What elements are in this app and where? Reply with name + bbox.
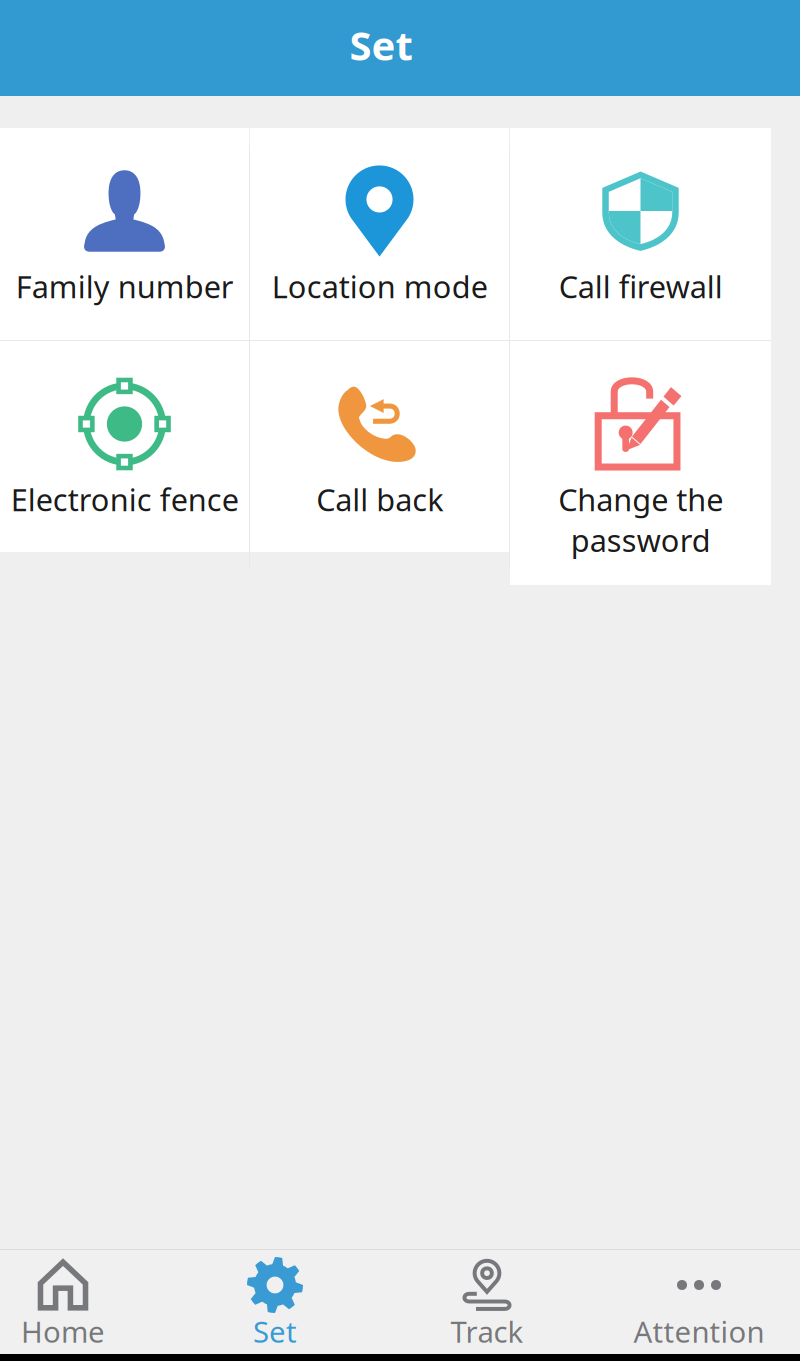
button[interactable]: Track xyxy=(381,1249,593,1354)
button[interactable]: Electronic fence xyxy=(0,341,249,552)
staticText: Call back xyxy=(316,479,443,520)
staticText: Location mode xyxy=(271,266,487,307)
button[interactable]: Home xyxy=(0,1249,169,1354)
button[interactable]: Family number xyxy=(0,128,249,340)
button[interactable]: Call back xyxy=(250,341,509,552)
staticText: Attention xyxy=(633,1312,764,1351)
staticText: Change the password xyxy=(558,479,723,560)
button[interactable]: Location mode xyxy=(250,128,509,340)
button[interactable]: Change the password xyxy=(510,341,771,585)
staticText: Set xyxy=(253,1312,297,1351)
staticText: Electronic fence xyxy=(10,479,238,520)
staticText: Home xyxy=(21,1312,105,1351)
staticText: Set xyxy=(349,18,412,71)
button[interactable]: Call firewall xyxy=(510,128,771,340)
staticText: Call firewall xyxy=(558,266,722,307)
staticText: Family number xyxy=(15,266,233,307)
staticText: Track xyxy=(450,1312,523,1351)
button[interactable]: Set xyxy=(169,1249,381,1354)
button[interactable]: Attention xyxy=(593,1249,800,1354)
